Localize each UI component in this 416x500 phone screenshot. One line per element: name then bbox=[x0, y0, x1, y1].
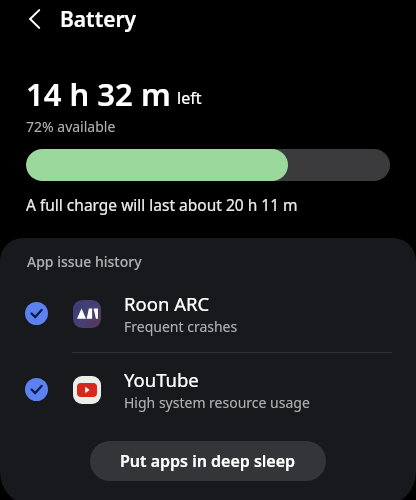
staticText: YouTube bbox=[124, 367, 199, 392]
button[interactable]: YouTube bbox=[0, 363, 416, 417]
staticText: 72% available bbox=[26, 117, 116, 136]
staticText: Battery bbox=[60, 5, 137, 34]
staticText: 14 h 32 m bbox=[26, 73, 171, 115]
staticText: App issue history bbox=[27, 252, 142, 271]
staticText: High system resource usage bbox=[124, 393, 310, 412]
button[interactable]: Roon ARC bbox=[0, 287, 416, 341]
staticText: Roon ARC bbox=[124, 291, 210, 316]
button[interactable]: Put apps in deep sleep bbox=[90, 441, 326, 481]
staticText: A full charge will last about 20 h 11 m bbox=[26, 194, 298, 215]
button[interactable]: Back bbox=[19, 4, 49, 34]
staticText: Frequent crashes bbox=[124, 317, 238, 336]
staticText: left bbox=[177, 87, 202, 109]
staticText: Put apps in deep sleep bbox=[120, 450, 296, 472]
